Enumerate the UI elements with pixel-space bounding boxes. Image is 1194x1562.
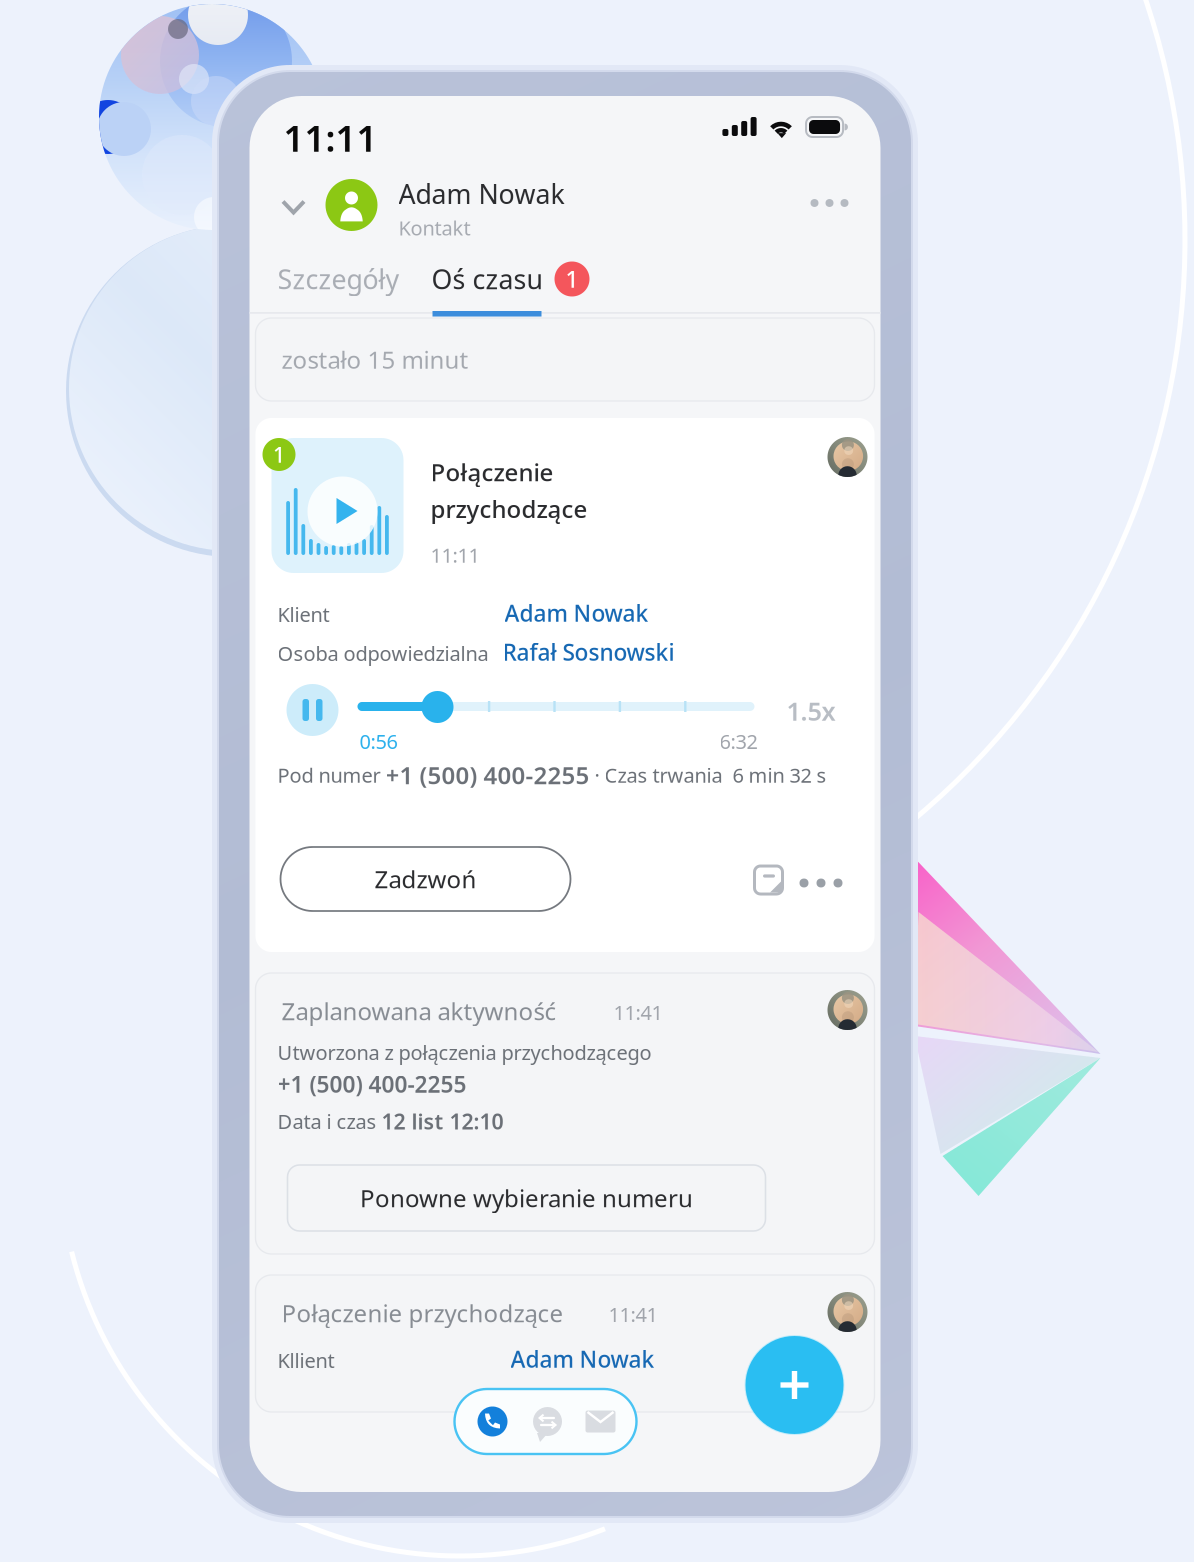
staticText: Klient — [277, 601, 329, 628]
button[interactable]: Message — [531, 1403, 563, 1439]
button[interactable]: Note — [752, 864, 784, 896]
staticText: 1 — [273, 440, 285, 469]
staticText: 11:41 — [608, 1301, 657, 1328]
staticText: zostało 15 minut — [281, 344, 468, 375]
button[interactable]: Ponowne wybieranie numeru — [287, 1165, 765, 1231]
button[interactable]: Rafał Sosnowski — [502, 637, 674, 667]
staticText: Połączenie przychodzące — [281, 1297, 563, 1329]
staticText: Adam Nowak — [510, 1344, 654, 1374]
button[interactable]: Pause — [286, 684, 338, 736]
staticText: 1 — [565, 264, 578, 294]
staticText: Adam Nowak — [398, 176, 564, 211]
staticText: Kllient — [277, 1347, 334, 1374]
button[interactable]: Szczegóły — [277, 260, 399, 298]
staticText: Zadzwoń — [374, 863, 476, 895]
staticText: 12 list 12:10 — [381, 1107, 503, 1135]
staticText: Rafał Sosnowski — [502, 637, 674, 667]
staticText: Ponowne wybieranie numeru — [360, 1182, 693, 1214]
staticText: +1 (500) 400-2255 — [385, 759, 589, 791]
button[interactable]: More options — [810, 188, 848, 218]
staticText: Osoba odpowiedzialna — [277, 640, 488, 667]
button[interactable]: Adam Nowak — [510, 1344, 654, 1374]
staticText: Połączenie — [430, 456, 553, 488]
button[interactable]: Adam Nowak — [504, 598, 648, 628]
staticText: · — [589, 762, 604, 788]
staticText: przychodzące — [430, 493, 587, 525]
button[interactable]: Zadzwoń — [280, 847, 570, 911]
button[interactable]: Call — [474, 1403, 510, 1439]
button[interactable]: More — [799, 870, 842, 896]
button[interactable]: Collapse — [273, 188, 313, 226]
staticText: Utworzona z połączenia przychodzącego — [277, 1039, 651, 1066]
button[interactable]: Oś czasu — [431, 260, 589, 298]
staticText: Adam Nowak — [504, 598, 648, 628]
button[interactable]: Add — [744, 1335, 844, 1435]
staticText: 6:32 — [719, 728, 757, 755]
staticText: 6 min 32 s — [727, 762, 826, 788]
staticText: Oś czasu — [431, 261, 542, 297]
staticText: Czas trwania — [604, 762, 727, 788]
staticText: +1 (500) 400-2255 — [277, 1069, 466, 1099]
staticText: Data i czas — [277, 1108, 381, 1134]
staticText: 1.5x — [786, 694, 835, 728]
staticText: 0:56 — [359, 728, 397, 755]
button[interactable]: Email — [584, 1403, 616, 1439]
staticText: 11:11 — [283, 114, 377, 162]
staticText: Kontakt — [398, 214, 470, 241]
staticText: Zaplanowana aktywność — [281, 995, 556, 1027]
staticText: 11:41 — [613, 999, 662, 1026]
staticText: Szczegóły — [277, 261, 399, 297]
staticText: Pod numer — [277, 762, 385, 788]
staticText: 11:11 — [430, 542, 479, 568]
